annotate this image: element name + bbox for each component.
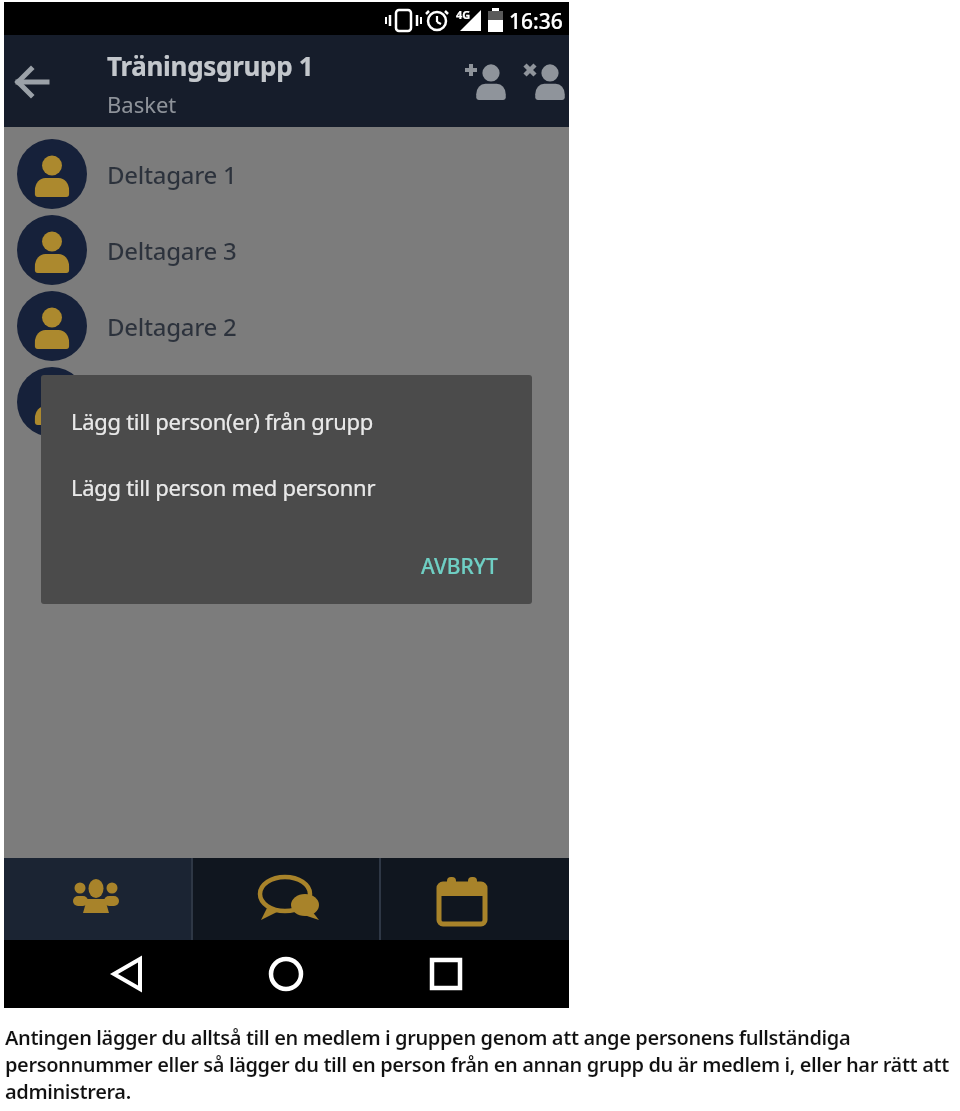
button[interactable] — [521, 60, 569, 104]
button[interactable]: Lägg till person(er) från grupp — [41, 395, 532, 447]
staticText: Deltagare 4 — [107, 386, 237, 419]
staticText: Basket — [107, 89, 177, 119]
button[interactable] — [462, 60, 512, 104]
button[interactable] — [99, 946, 159, 1002]
staticText: 16:36 — [509, 7, 563, 36]
staticText: Lägg till person med personnr — [71, 472, 376, 502]
staticText: administrera. — [5, 1078, 131, 1105]
button[interactable]: Deltagare 2 — [17, 291, 437, 361]
button[interactable]: Deltagare 4 — [17, 367, 437, 437]
staticText: AVBRYT — [421, 552, 498, 581]
staticText: 4G — [456, 7, 471, 22]
button[interactable] — [10, 60, 54, 104]
button[interactable]: Deltagare 3 — [17, 215, 437, 285]
button[interactable] — [193, 858, 379, 940]
button[interactable]: Lägg till person med personnr — [41, 461, 532, 513]
staticText: Deltagare 3 — [107, 234, 237, 267]
staticText: Deltagare 1 — [107, 158, 237, 191]
staticText: Lägg till person(er) från grupp — [71, 406, 374, 436]
button[interactable] — [4, 858, 191, 940]
staticText: personnummer eller så lägger du till en … — [5, 1051, 949, 1078]
staticText: Deltagare 2 — [107, 310, 237, 343]
button[interactable]: AVBRYT — [414, 546, 504, 586]
staticText: Träningsgrupp 1 — [107, 48, 314, 83]
button[interactable]: Deltagare 1 — [17, 139, 437, 209]
button[interactable] — [256, 946, 316, 1002]
button[interactable] — [417, 946, 477, 1002]
staticText: Antingen lägger du alltså till en medlem… — [5, 1024, 851, 1051]
button[interactable] — [381, 858, 569, 940]
